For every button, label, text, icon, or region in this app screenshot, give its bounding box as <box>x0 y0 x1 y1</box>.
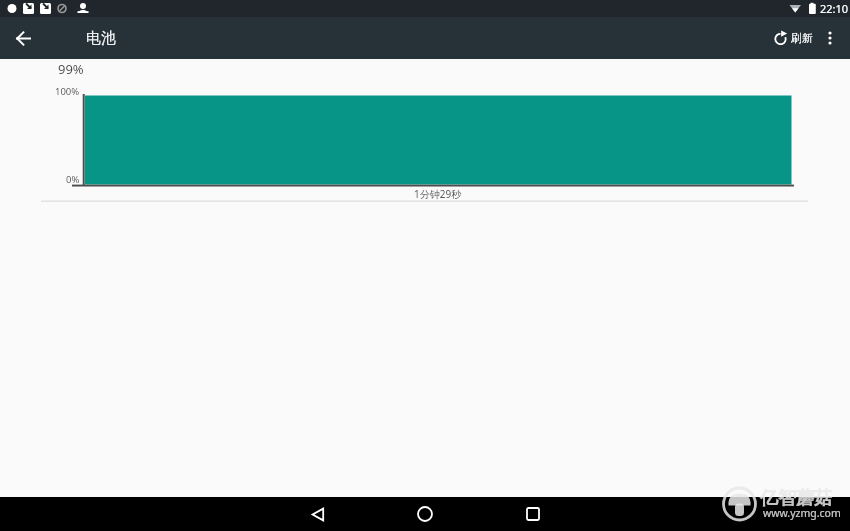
staticText: www.yzmg.com <box>763 506 841 520</box>
button[interactable] <box>0 17 47 59</box>
button[interactable] <box>403 497 447 531</box>
staticText: 1分钟29秒 <box>414 187 462 201</box>
staticText: 亿智蘑菇 <box>760 487 832 510</box>
button[interactable] <box>815 17 845 59</box>
button[interactable] <box>511 497 555 531</box>
button[interactable] <box>296 497 340 531</box>
staticText: 100% <box>55 85 80 98</box>
staticText: 99% <box>58 60 84 78</box>
staticText: 0% <box>66 173 80 186</box>
staticText: 电池 <box>86 29 116 48</box>
staticText: 22:10 <box>820 1 849 16</box>
staticText: 刷新 <box>791 31 813 45</box>
button[interactable]: 刷新 <box>772 17 815 59</box>
